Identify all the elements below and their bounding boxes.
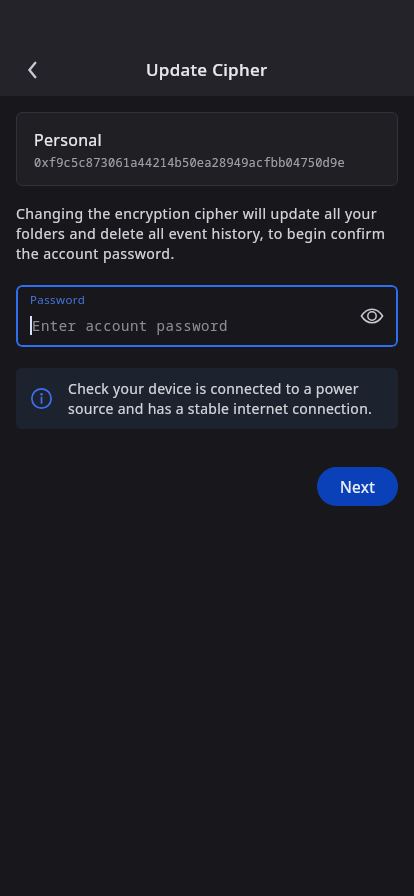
button[interactable] bbox=[352, 296, 392, 336]
staticText: Check your device is connected to a powe… bbox=[68, 379, 386, 418]
staticText: Enter account password bbox=[32, 316, 228, 335]
staticText: Next bbox=[340, 476, 376, 497]
button[interactable] bbox=[9, 46, 57, 94]
staticText: Personal bbox=[34, 129, 103, 151]
staticText: 0xf9c5c873061a44214b50ea28949acfbb04750d… bbox=[34, 154, 345, 170]
button[interactable]: Next bbox=[317, 467, 398, 506]
button[interactable]: Personal bbox=[16, 112, 398, 186]
button[interactable]: Password bbox=[16, 285, 398, 347]
staticText: Changing the encryption cipher will upda… bbox=[16, 204, 398, 263]
staticText: Password bbox=[30, 292, 86, 308]
staticText: Update Cipher bbox=[146, 58, 268, 81]
